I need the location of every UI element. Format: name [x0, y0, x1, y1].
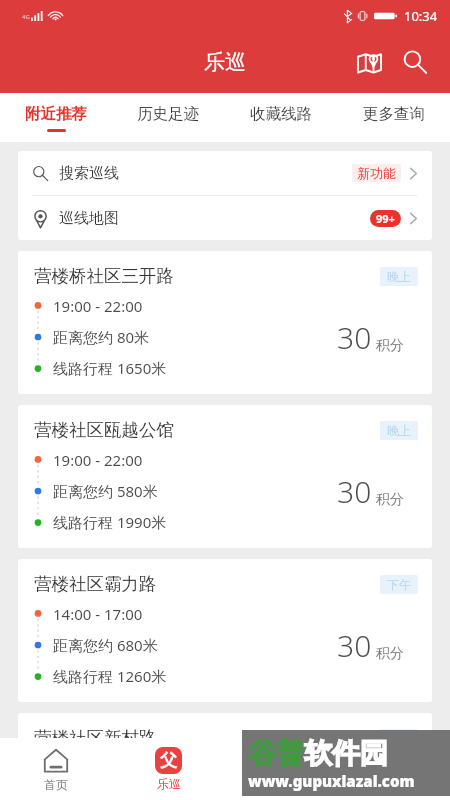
staticText: 99+: [376, 211, 395, 226]
staticText: 30: [337, 471, 372, 512]
button[interactable]: 附近推荐: [0, 93, 112, 142]
staticText: 晚上: [387, 269, 411, 284]
staticText: 软件园: [304, 736, 388, 771]
staticText: 19:00 - 22:00: [53, 450, 143, 470]
staticText: 10:34: [404, 7, 438, 25]
staticText: 距离您约 680米: [53, 635, 158, 655]
staticText: 积分: [376, 763, 404, 781]
staticText: 14:00 - 17:00: [53, 758, 143, 778]
staticText: 距离您约 80米: [53, 327, 150, 347]
button[interactable]: 营楼社区霸力路: [18, 559, 432, 702]
staticText: 附近推荐: [25, 104, 87, 124]
button[interactable]: 更多查询: [337, 93, 450, 142]
staticText: 营楼桥社区三开路: [34, 265, 174, 287]
button[interactable]: 父: [112, 738, 224, 800]
staticText: 收藏线路: [250, 104, 312, 124]
staticText: 积分: [376, 337, 404, 355]
staticText: 营楼社区新村路: [34, 727, 157, 749]
staticText: 营楼社区瓯越公馆: [34, 419, 174, 441]
button[interactable]: 首页: [0, 738, 112, 800]
staticText: 积分: [376, 645, 404, 663]
button[interactable]: 收藏线路: [224, 93, 337, 142]
staticText: 距离您约 780米: [53, 778, 158, 784]
staticText: 首页: [44, 777, 68, 792]
staticText: 历史足迹: [137, 104, 199, 124]
staticText: 线路行程 1260米: [53, 666, 167, 686]
staticText: 30: [337, 758, 372, 784]
staticText: 乐巡: [204, 49, 246, 75]
button[interactable]: 营楼桥社区三开路: [18, 251, 432, 394]
staticText: 更多查询: [363, 104, 425, 124]
staticText: 积分: [376, 491, 404, 509]
staticText: 线路行程 1990米: [53, 512, 167, 532]
staticText: 父: [160, 750, 177, 771]
button[interactable]: Map: [348, 41, 390, 83]
staticText: 谷普: [248, 736, 304, 771]
staticText: 晚上: [387, 423, 411, 438]
staticText: 14:00 - 17:00: [53, 604, 143, 624]
button[interactable]: 营楼社区瓯越公馆: [18, 405, 432, 548]
staticText: 30: [337, 317, 372, 358]
button[interactable]: 搜索巡线: [18, 151, 432, 195]
staticText: 4G: [22, 13, 30, 21]
staticText: 搜索巡线: [59, 164, 119, 183]
staticText: 营楼社区霸力路: [34, 573, 157, 595]
button[interactable]: 历史足迹: [112, 93, 224, 142]
staticText: 下午: [387, 577, 411, 592]
staticText: 新功能: [357, 165, 396, 181]
staticText: 距离您约 580米: [53, 481, 158, 501]
staticText: 巡线地图: [59, 209, 119, 228]
staticText: www.gupuxlazal.com: [248, 771, 415, 791]
staticText: 19:00 - 22:00: [53, 296, 143, 316]
staticText: 30: [337, 625, 372, 666]
staticText: 乐巡: [157, 776, 181, 791]
button[interactable]: 巡线地图: [18, 196, 432, 240]
staticText: 线路行程 1650米: [53, 358, 167, 378]
button[interactable]: [224, 738, 337, 800]
button[interactable]: [337, 738, 450, 800]
button[interactable]: Search: [394, 41, 436, 83]
button[interactable]: 营楼社区新村路: [18, 713, 432, 800]
